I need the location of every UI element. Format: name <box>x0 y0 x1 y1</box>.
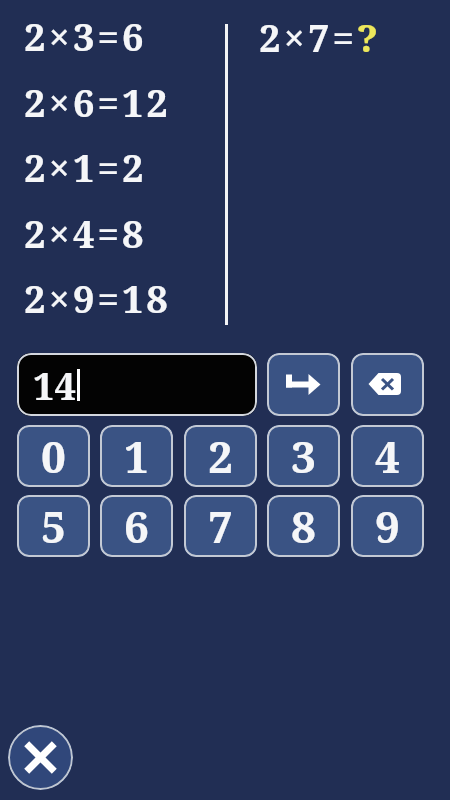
button[interactable]: 1 <box>100 425 173 487</box>
button[interactable]: 2 <box>184 425 257 487</box>
button[interactable]: 9 <box>351 495 424 557</box>
staticText: 2×3=6 <box>24 10 147 62</box>
staticText: 6 <box>124 496 149 556</box>
button[interactable]: 14 <box>17 353 257 416</box>
button[interactable]: 4 <box>351 425 424 487</box>
staticText: 7 <box>208 496 233 556</box>
staticText: 2×6=12 <box>24 76 171 128</box>
button[interactable] <box>8 725 73 790</box>
staticText: 9 <box>375 496 400 556</box>
button[interactable]: 3 <box>267 425 340 487</box>
button[interactable]: 5 <box>17 495 90 557</box>
button[interactable]: 7 <box>184 495 257 557</box>
button[interactable]: 0 <box>17 425 90 487</box>
staticText: 0 <box>41 426 66 486</box>
staticText: 14 <box>33 359 76 411</box>
staticText: 2×4=8 <box>24 207 147 259</box>
button[interactable]: 6 <box>100 495 173 557</box>
staticText: 5 <box>41 496 66 556</box>
staticText: 2×7=? <box>259 11 381 63</box>
staticText: 8 <box>291 496 316 556</box>
button[interactable]: 8 <box>267 495 340 557</box>
staticText: 4 <box>375 426 400 486</box>
staticText: 3 <box>291 426 316 486</box>
button[interactable] <box>351 353 424 416</box>
staticText: 2×1=2 <box>24 141 147 193</box>
staticText: 2×9=18 <box>24 272 171 324</box>
staticText: 2 <box>208 426 233 486</box>
staticText: 1 <box>124 426 149 486</box>
button[interactable] <box>267 353 340 416</box>
